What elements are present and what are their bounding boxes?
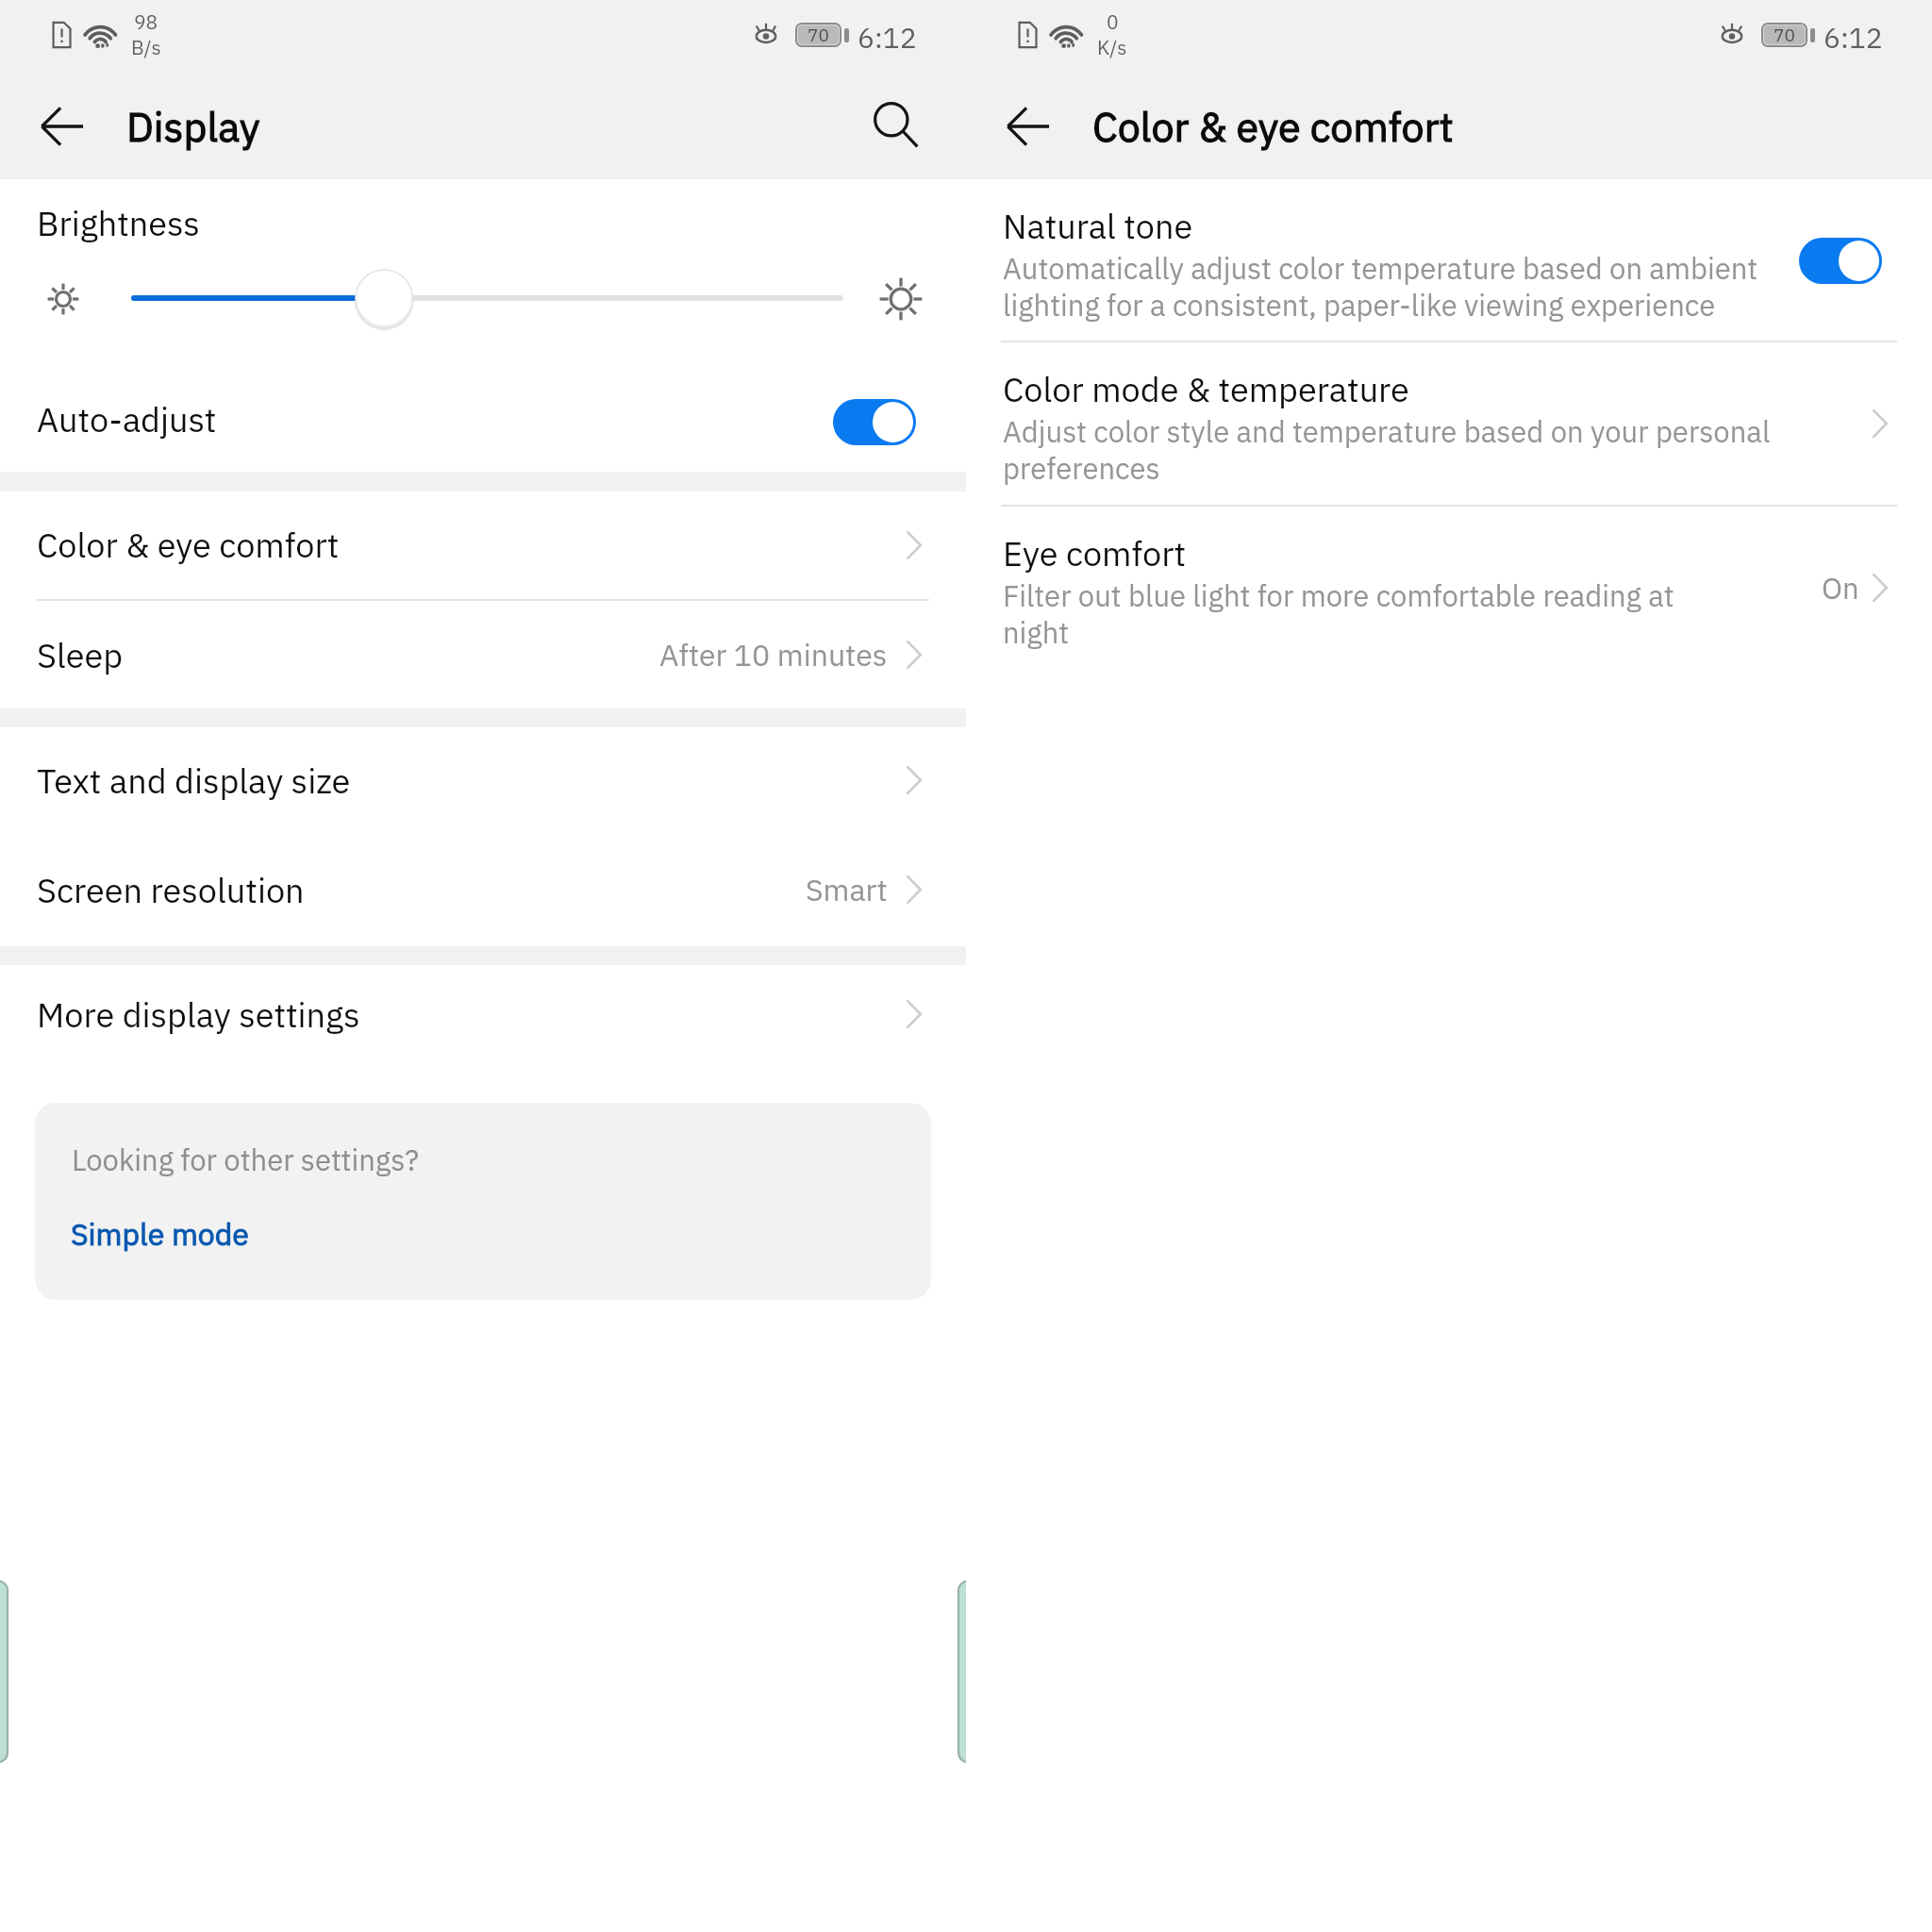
staticText: 70 [1774,24,1795,47]
staticText: Simple mode [71,1214,249,1254]
button[interactable]: Simple mode [71,1214,249,1254]
button[interactable]: Text and display size [0,725,966,835]
staticText: 6:12 [858,19,917,56]
staticText: Automatically adjust color temperature b… [1003,249,1769,324]
button[interactable]: Looking for other settings? [35,1103,931,1300]
staticText: 0 [1107,8,1119,34]
staticText: Display [126,100,260,153]
staticText: Looking for other settings? [72,1141,420,1178]
button[interactable]: Toggle on [1799,238,1882,284]
button[interactable]: Color & eye comfort [0,491,966,599]
staticText: Natural tone [1003,204,1193,248]
staticText: Screen resolution [37,868,305,912]
button[interactable]: Screen resolution [0,835,966,944]
staticText: Smart [806,870,888,909]
staticText: Color & eye comfort [1092,100,1454,153]
button[interactable]: Back [991,89,1066,164]
button[interactable]: Auto-adjust [0,362,966,475]
button[interactable]: Color mode & temperature [966,342,1932,505]
button[interactable]: Increase brightness [878,276,924,322]
staticText: B/s [131,34,161,59]
staticText: Filter out blue light for more comfortab… [1003,576,1701,651]
staticText: Eye comfort [1003,531,1187,575]
button[interactable]: Sleep [0,601,966,708]
staticText: 98 [134,8,158,34]
button[interactable]: Decrease brightness [46,282,80,316]
button[interactable]: More display settings [0,959,966,1069]
button[interactable]: Natural tone [966,179,1932,341]
staticText: More display settings [37,992,360,1037]
staticText: Auto-adjust [37,397,217,441]
button[interactable]: Eye comfort [966,507,1932,669]
staticText: On [1822,569,1859,607]
staticText: K/s [1097,34,1127,59]
staticText: After 10 minutes [659,635,888,675]
staticText: Text and display size [37,758,351,803]
staticText: Adjust color style and temperature based… [1003,412,1786,487]
staticText: Color mode & temperature [1003,367,1409,411]
staticText: 6:12 [1824,19,1883,56]
staticText: Sleep [37,633,124,677]
button[interactable]: Toggle on [833,399,916,445]
staticText: Brightness [37,201,200,245]
staticText: Color & eye comfort [37,523,340,567]
button[interactable]: Search [858,88,934,163]
button[interactable]: Brightness slider [94,264,887,332]
staticText: 70 [808,24,829,47]
button[interactable]: Back [25,89,100,164]
